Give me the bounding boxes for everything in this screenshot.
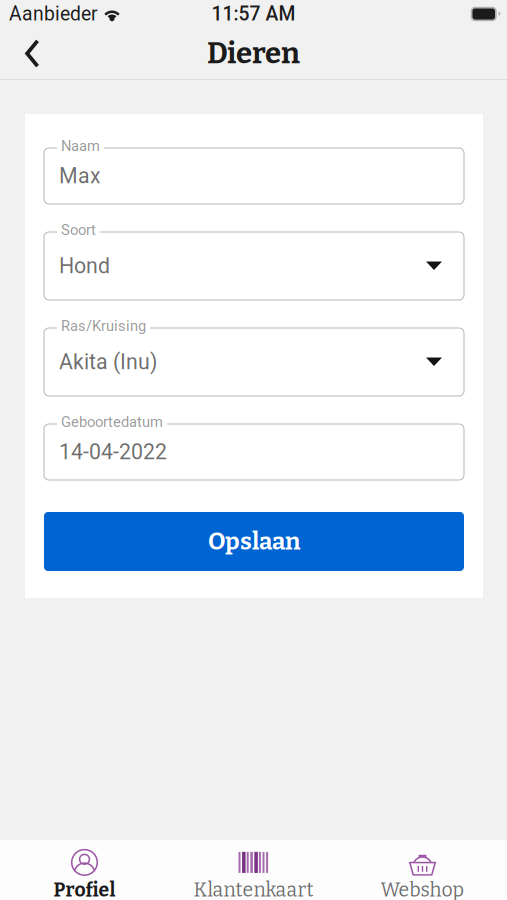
staticText: Profiel xyxy=(53,878,115,900)
button[interactable]: Webshop xyxy=(338,840,507,900)
staticText: Akita (Inu) xyxy=(59,349,157,374)
staticText: 14-04-2022 xyxy=(59,439,167,464)
staticText: Aanbieder xyxy=(9,3,98,25)
button[interactable]: Profiel xyxy=(0,840,169,900)
staticText: Geboortedatum xyxy=(61,413,163,431)
staticText: Klantenkaart xyxy=(193,878,313,900)
button[interactable]: Klantenkaart xyxy=(169,840,338,900)
staticText: Hond xyxy=(59,253,110,278)
button[interactable]: Back xyxy=(10,30,56,76)
staticText: Opslaan xyxy=(208,527,300,556)
staticText: Soort xyxy=(61,221,96,239)
staticText: Max xyxy=(59,163,101,188)
staticText: 11:57 AM xyxy=(211,3,295,25)
staticText: Naam xyxy=(61,137,100,155)
staticText: Dieren xyxy=(207,36,300,71)
button[interactable]: Opslaan xyxy=(44,512,464,571)
staticText: Webshop xyxy=(380,878,464,900)
staticText: Ras/Kruising xyxy=(61,317,146,335)
